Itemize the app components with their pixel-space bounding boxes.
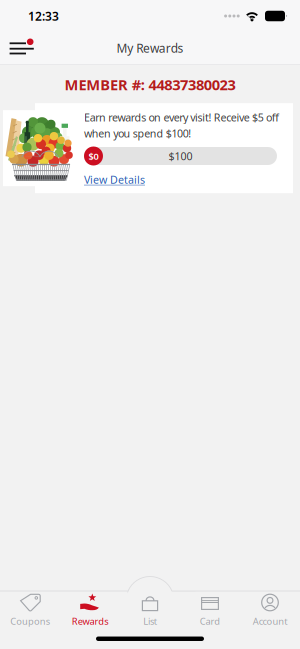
staticText: List: [143, 615, 157, 627]
staticText: My Rewards: [116, 40, 183, 56]
button[interactable]: Account: [240, 593, 300, 627]
button[interactable]: Rewards: [60, 593, 120, 627]
staticText: Rewards: [72, 615, 108, 627]
staticText: Account: [253, 615, 287, 627]
staticText: 12:33: [28, 8, 59, 24]
button[interactable]: Coupons: [0, 593, 60, 627]
staticText: $0: [88, 150, 98, 162]
staticText: Card: [200, 615, 220, 627]
staticText: View Details: [84, 172, 145, 187]
staticText: Coupons: [10, 615, 50, 627]
button[interactable]: Menu: [8, 37, 38, 59]
staticText: $100: [168, 149, 192, 163]
staticText: MEMBER #: 44837380023: [64, 75, 235, 94]
button[interactable]: Card: [180, 593, 240, 627]
button[interactable]: List: [120, 593, 180, 627]
staticText: Earn rewards on every visit! Receive $5 …: [84, 110, 279, 124]
staticText: when you spend $100!: [84, 126, 191, 140]
button[interactable]: View Details: [84, 165, 145, 189]
